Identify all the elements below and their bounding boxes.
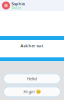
button[interactable]: Hi girl 😊	[3, 87, 60, 97]
staticText: Online	[11, 6, 21, 10]
staticText: Sophia	[11, 1, 24, 6]
staticText: Hi girl 😊	[23, 89, 40, 94]
button[interactable]: Hello!	[3, 74, 60, 84]
staticText: Hello!	[27, 76, 37, 81]
staticText: Ask her out	[20, 43, 43, 48]
button[interactable]: Profile photo	[2, 1, 10, 9]
